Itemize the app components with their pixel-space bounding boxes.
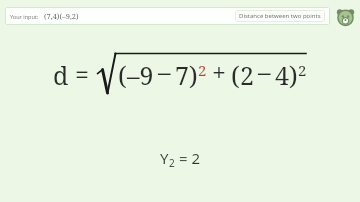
staticText: Your input: xyxy=(10,13,39,20)
staticText: ( xyxy=(118,58,127,92)
staticText: ) xyxy=(289,58,298,92)
staticText: d xyxy=(53,58,69,92)
staticText: + xyxy=(212,55,226,89)
button[interactable]: App logo xyxy=(334,5,356,27)
other: App logo xyxy=(336,7,355,26)
staticText: – xyxy=(258,54,271,88)
staticText: ( xyxy=(231,58,240,92)
button[interactable]: Distance between two points xyxy=(235,10,325,22)
staticText: 2 xyxy=(298,60,307,80)
staticText: = 2 xyxy=(179,148,201,168)
staticText: 7 xyxy=(175,58,189,92)
staticText: = xyxy=(75,57,89,91)
staticText: 2 xyxy=(240,58,254,92)
staticText: ) xyxy=(189,58,198,92)
staticText: 4 xyxy=(275,58,289,92)
button[interactable]: Your input: xyxy=(5,7,330,25)
staticText: – xyxy=(158,54,171,88)
staticText: 2 xyxy=(169,156,175,170)
staticText: –9 xyxy=(127,58,154,92)
staticText: Y xyxy=(160,148,169,168)
staticText: Distance between two points xyxy=(239,12,321,20)
staticText: (7,4)(–9,2) xyxy=(44,11,79,21)
staticText: 2 xyxy=(198,60,207,80)
